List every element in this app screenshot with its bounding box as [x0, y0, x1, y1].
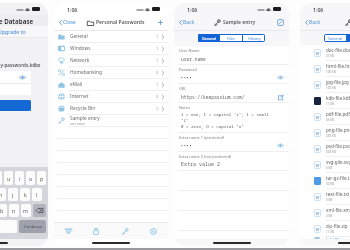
- button[interactable]: eMail: [54, 79, 168, 90]
- button[interactable]: Backspace: [33, 204, 46, 217]
- staticText: kdb-file.kdb: [326, 95, 350, 101]
- staticText: my-passwords.kdbx: [0, 62, 41, 68]
- staticText: i: [19, 175, 21, 182]
- button[interactable]: General: [324, 34, 346, 42]
- button[interactable]: Close: [58, 17, 77, 28]
- staticText: 6 KB: [326, 166, 333, 170]
- button[interactable]: Sort: [54, 223, 82, 239]
- button[interactable]: Edit: [275, 17, 286, 28]
- button[interactable]: Recycle Bin: [54, 103, 168, 114]
- staticText: user name: [70, 122, 86, 126]
- staticText: p: [40, 175, 44, 182]
- staticText: Windows: [70, 45, 91, 52]
- button[interactable]: kdb-file.kdb: [300, 93, 350, 108]
- button[interactable]: Sample entry: [54, 115, 168, 126]
- button[interactable]: Settings: [139, 223, 168, 239]
- staticText: zip-file.zip: [326, 223, 348, 229]
- button[interactable]: html-file.html: [300, 61, 350, 76]
- staticText: Add File: [325, 237, 343, 239]
- staticText: 11 KB: [326, 230, 335, 234]
- button[interactable]: Homebanking: [54, 67, 168, 78]
- button[interactable]: Back: [304, 17, 322, 28]
- button[interactable]: Lock: [82, 223, 110, 239]
- button[interactable]: y: [0, 171, 2, 185]
- staticText: Notes: [179, 105, 190, 110]
- staticText: 1:06: [187, 6, 198, 13]
- button[interactable]: Add File: [300, 237, 350, 239]
- staticText: user.name: [181, 56, 206, 62]
- staticText: k: [24, 191, 27, 198]
- staticText: Choose Database: [0, 17, 34, 25]
- staticText: html-file.html: [326, 63, 350, 69]
- button[interactable]: zip-file.zip: [300, 221, 350, 236]
- button[interactable]: Upgrade to Premium: [0, 26, 48, 37]
- staticText: 1: [156, 58, 159, 64]
- button[interactable]: tar-gz-file.tar.gz: [300, 173, 350, 188]
- button[interactable]: pdf-file.pdf: [300, 109, 350, 124]
- button[interactable]: Keys: [110, 223, 139, 239]
- staticText: URL: [179, 86, 187, 91]
- button[interactable]: History: [243, 34, 265, 42]
- staticText: 1: [156, 82, 159, 88]
- staticText: 3: [156, 106, 159, 112]
- staticText: 1: [156, 34, 159, 40]
- staticText: tar-gz-file.tar.gz: [326, 175, 350, 181]
- button[interactable]: png-file.png: [300, 125, 350, 140]
- button[interactable]: u: [4, 171, 13, 185]
- staticText: 1: [156, 46, 159, 52]
- staticText: 2 KB: [326, 214, 333, 218]
- button[interactable]: Add item: [156, 18, 165, 27]
- button[interactable]: Reveal: [277, 143, 284, 148]
- button[interactable]: Internet: [54, 91, 168, 102]
- staticText: o: [29, 175, 33, 182]
- staticText: h: [0, 191, 3, 198]
- button[interactable]: k: [20, 188, 30, 201]
- button[interactable]: l: [32, 188, 42, 201]
- button[interactable]: General: [198, 34, 219, 42]
- staticText: Sample entry: [223, 19, 256, 26]
- staticText: j: [12, 191, 14, 198]
- button[interactable]: jpg-file.jpg: [300, 77, 350, 92]
- staticText: Network: [70, 57, 90, 64]
- button[interactable]: p: [37, 171, 46, 185]
- staticText: General: [202, 36, 216, 41]
- button[interactable]: i: [15, 171, 24, 185]
- button[interactable]: Reveal: [277, 75, 284, 80]
- button[interactable]: svg-gile.svg: [300, 157, 350, 172]
- button[interactable]: n: [9, 204, 19, 217]
- button[interactable]: [0, 100, 31, 111]
- button[interactable]: m: [21, 204, 31, 217]
- button[interactable]: doc-file.doc: [300, 45, 350, 60]
- staticText: 1:06: [67, 6, 78, 13]
- button[interactable]: Network: [54, 55, 168, 66]
- button[interactable]: Show password: [19, 75, 26, 80]
- staticText: Sample entry: [70, 115, 100, 122]
- button[interactable]: Windows: [54, 43, 168, 54]
- staticText: Files: [227, 36, 235, 41]
- staticText: pdf-file.pdf: [326, 111, 350, 117]
- staticText: 11 KB: [326, 102, 335, 106]
- button[interactable]: Continue: [19, 220, 46, 233]
- button[interactable]: psd-file.psd: [300, 141, 350, 156]
- button[interactable]: text-file.txt: [300, 189, 350, 204]
- staticText: eMail: [70, 81, 83, 88]
- button[interactable]: General: [54, 31, 168, 42]
- button[interactable]: Back: [178, 17, 196, 28]
- staticText: 5 KB: [326, 198, 333, 202]
- staticText: psd-file.psd: [326, 143, 350, 149]
- staticText: "L": [181, 118, 189, 124]
- button[interactable]: j: [8, 188, 18, 201]
- button[interactable]: Open link: [278, 94, 284, 100]
- button[interactable]: xml-file.xml: [300, 205, 350, 220]
- staticText: Recycle Bin: [70, 105, 96, 112]
- button[interactable]: h: [0, 188, 6, 201]
- button[interactable]: b: [0, 204, 7, 217]
- staticText: Extra value 2: [181, 161, 221, 168]
- button[interactable]: o: [26, 171, 35, 185]
- staticText: History: [248, 36, 261, 41]
- button[interactable]: Files: [220, 34, 242, 42]
- staticText: Homebanking: [70, 69, 102, 76]
- staticText: Continue: [24, 224, 42, 230]
